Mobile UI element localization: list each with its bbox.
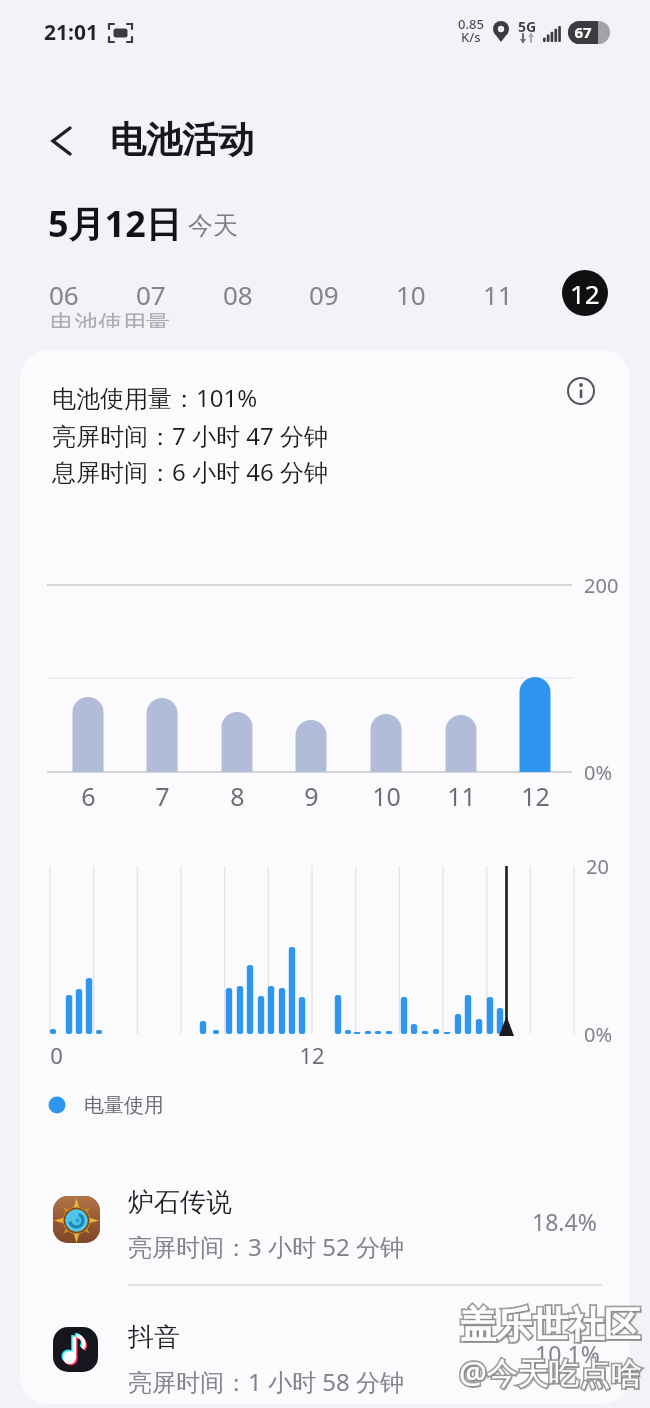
button[interactable] (40, 115, 92, 167)
staticText: 息屏时间：6 小时 46 分钟 (52, 455, 328, 488)
button[interactable] (40, 1180, 610, 1270)
staticText: 亮屏时间：3 小时 52 分钟 (128, 1230, 404, 1263)
staticText: 电量使用 (84, 1093, 164, 1118)
button[interactable] (40, 1310, 610, 1400)
staticText: 抖音 (128, 1321, 180, 1354)
staticText: 5G (518, 17, 537, 36)
staticText: 亮屏时间：1 小时 58 分钟 (128, 1365, 404, 1398)
staticText: 07 (136, 277, 166, 312)
staticText: 12 (299, 1040, 325, 1070)
button[interactable]: 09 (298, 268, 350, 320)
staticText: 67 (574, 22, 592, 42)
button[interactable]: 07 (125, 268, 177, 320)
button[interactable]: 12 (562, 270, 608, 316)
staticText: 12 (521, 779, 550, 813)
staticText: @今天吃点啥 (459, 1351, 642, 1393)
staticText: 09 (309, 277, 339, 312)
staticText: 0% (584, 1021, 613, 1048)
staticText: 20 (586, 853, 609, 880)
staticText: 11 (483, 277, 513, 312)
staticText: 0.85 (458, 15, 484, 33)
staticText: 21:01 (44, 18, 98, 47)
staticText: 18.4% (532, 1206, 597, 1237)
staticText: 7 (155, 779, 170, 813)
staticText: 0 (50, 1040, 63, 1070)
staticText: 今天 (188, 210, 238, 241)
staticText: K/s (461, 28, 481, 46)
staticText: 200 (584, 572, 619, 599)
staticText: 10 (396, 277, 426, 312)
staticText: 盖乐世社区 (460, 1302, 640, 1347)
staticText: @今天吃点啥 (461, 1353, 644, 1395)
staticText: 08 (223, 277, 253, 312)
staticText: 10.1% (535, 1338, 600, 1369)
staticText: 盖乐世社区 (460, 1302, 640, 1347)
staticText: 06 (49, 277, 79, 312)
staticText: 电池使用量 (50, 309, 170, 328)
button[interactable]: 08 (212, 268, 264, 320)
staticText: 5月12日 (48, 199, 182, 248)
staticText: 12 (570, 276, 600, 311)
button[interactable] (562, 372, 602, 412)
staticText: 10 (372, 779, 401, 813)
staticText: 9 (304, 779, 319, 813)
staticText: 电池使用量：101% (52, 381, 258, 414)
staticText: 亮屏时间：7 小时 47 分钟 (52, 419, 328, 452)
staticText: 炉石传说 (128, 1186, 232, 1219)
button[interactable]: 10 (385, 268, 437, 320)
staticText: @今天吃点啥 (459, 1351, 642, 1393)
button[interactable]: 06 (38, 268, 90, 320)
staticText: 6 (81, 779, 96, 813)
staticText: 电池活动 (110, 117, 254, 162)
button[interactable]: 11 (472, 268, 524, 320)
staticText: 0% (584, 759, 613, 786)
staticText: 11 (447, 779, 476, 813)
staticText: 8 (230, 779, 245, 813)
staticText: 盖乐世社区 (462, 1304, 642, 1349)
